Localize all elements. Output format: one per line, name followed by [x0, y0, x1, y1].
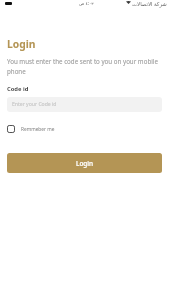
button[interactable]: Remmeber me	[7, 125, 55, 133]
other: Wi-Fi	[126, 1, 131, 4]
staticText: ٤:٠٣ ص	[79, 0, 94, 6]
staticText: Login	[7, 37, 36, 51]
button[interactable]: Login	[7, 153, 162, 173]
other: Camera	[5, 2, 12, 5]
staticText: Login	[76, 159, 94, 168]
button[interactable]: Enter your Code id	[7, 97, 162, 112]
staticText: Enter your Code id	[12, 101, 57, 108]
staticText: شركة الاتصالات	[132, 0, 167, 7]
staticText: You must enter the code sent to you on y…	[7, 57, 162, 76]
staticText: Remmeber me	[21, 126, 55, 133]
staticText: Code id	[7, 85, 29, 93]
